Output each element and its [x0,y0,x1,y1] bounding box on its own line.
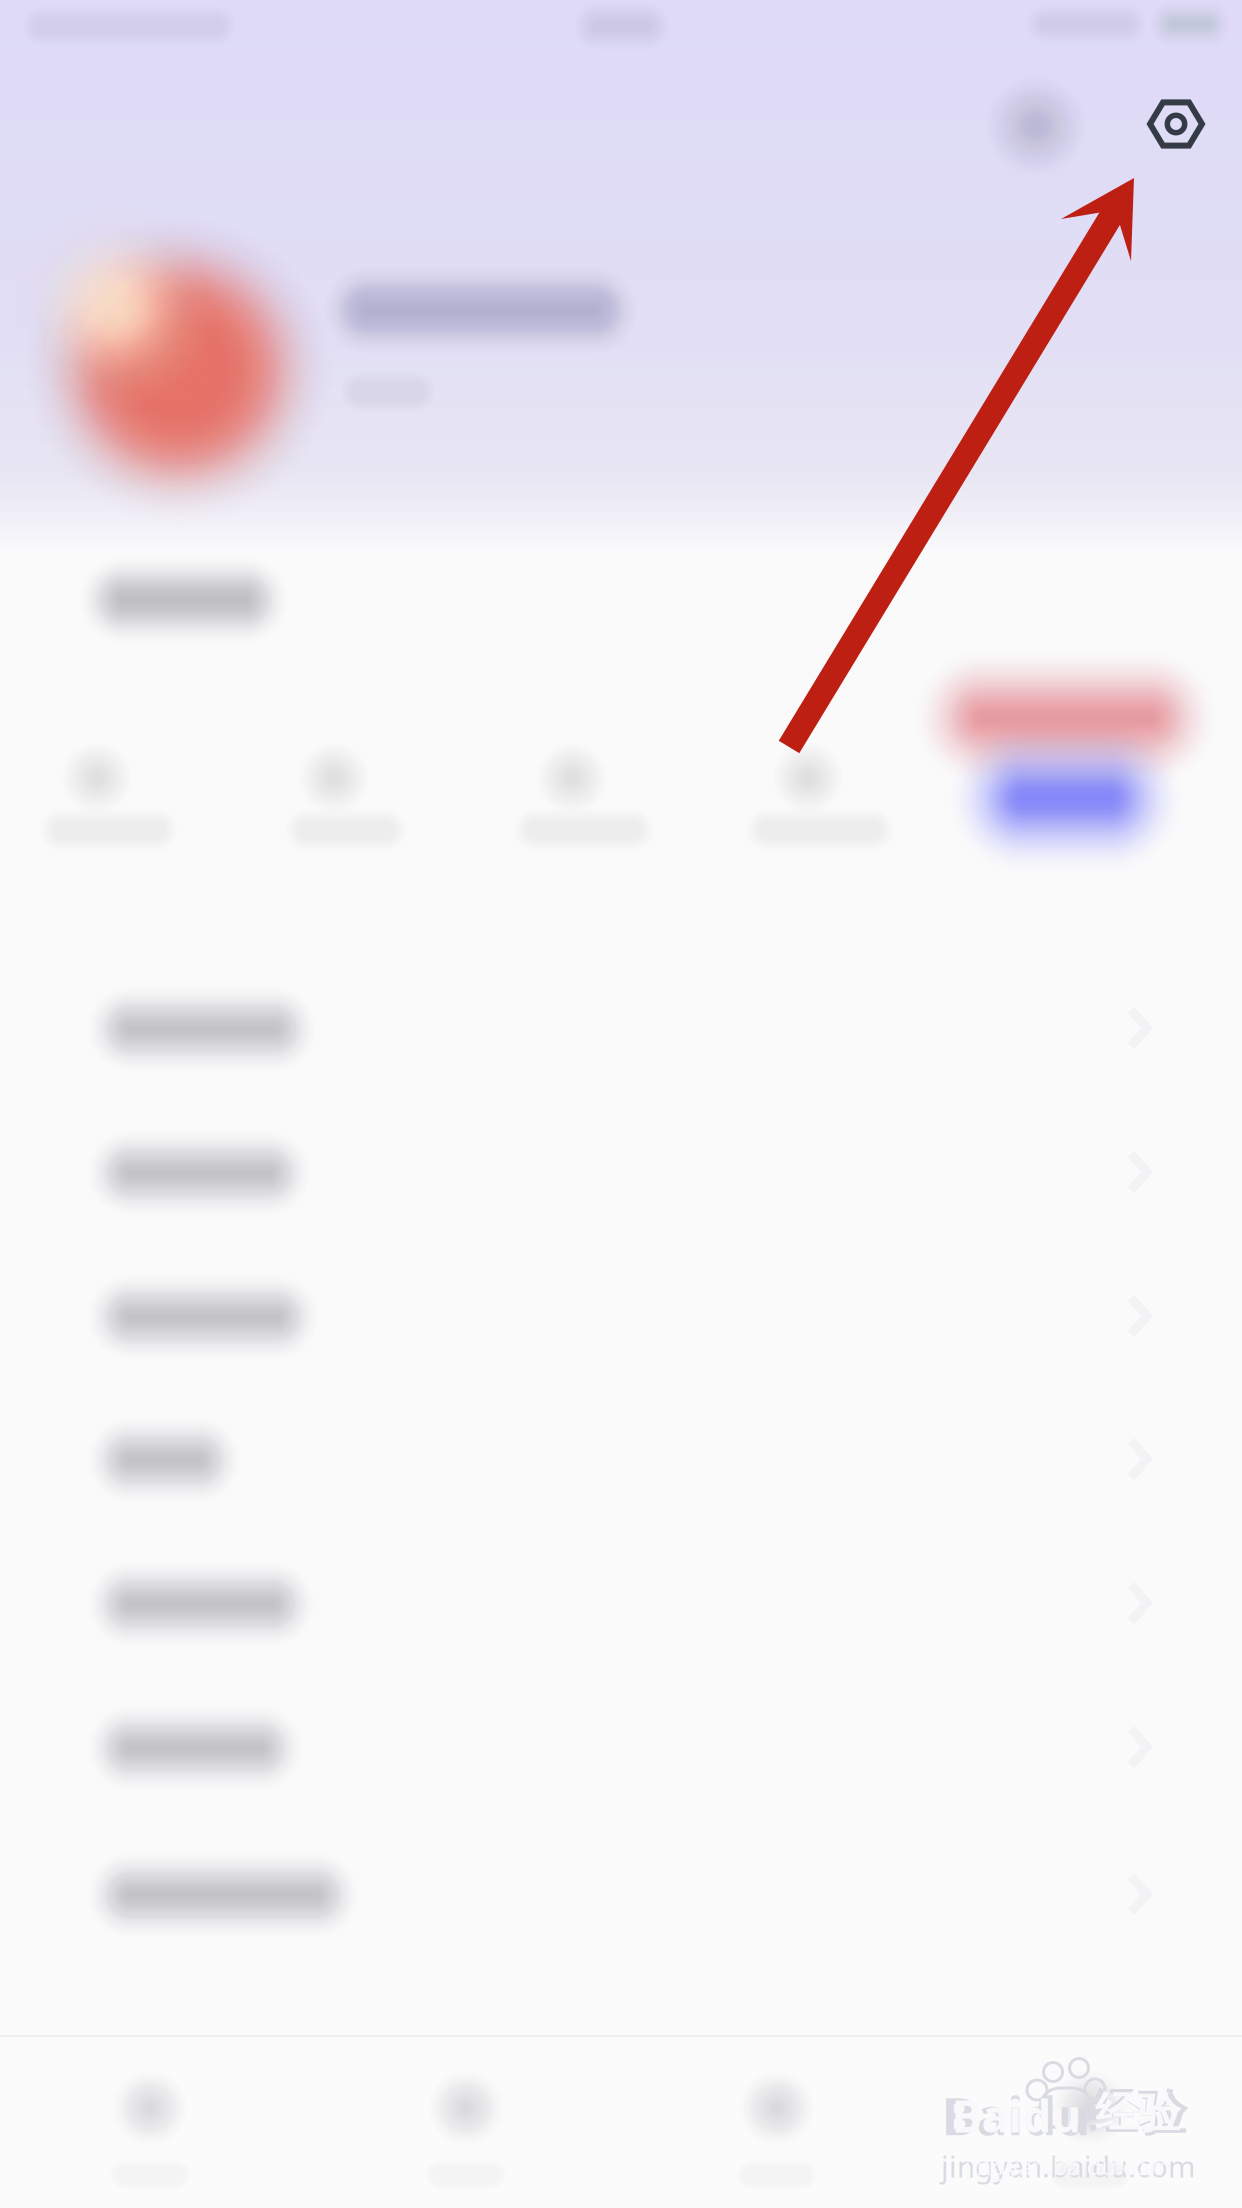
staticText: 经验 [1089,2083,1187,2143]
button[interactable]: Notifications [951,41,1121,211]
staticText: jingyan.baidu.com [941,2146,1195,2185]
button[interactable]: Shipped [442,675,702,925]
button[interactable]: Pending payment [0,675,227,925]
button[interactable]: Address book [0,957,1242,1101]
button[interactable]: My coupons [0,1245,1242,1389]
button[interactable]: Home [20,2036,280,2208]
staticText: 经验 [1095,2087,1181,2139]
button[interactable]: Me [960,2036,1220,2208]
staticText: jingyan.baidu.com [964,2150,1171,2182]
button[interactable]: Categories [336,2036,596,2208]
button[interactable]: Customer service [0,1532,1242,1676]
button[interactable]: Profile photo [0,144,397,584]
staticText: Baidu [941,2080,1090,2150]
button[interactable]: Favourites [0,1388,1242,1532]
button[interactable]: To ship [204,675,464,925]
button[interactable]: Cart [647,2036,907,2208]
button[interactable]: Payment methods [0,1101,1242,1245]
button[interactable]: Membership promotion [854,580,1242,950]
button[interactable]: Settings [1120,68,1232,180]
button[interactable]: Feedback [0,1676,1242,1820]
button[interactable]: Reviews [678,675,938,925]
button[interactable]: Terms and privacy [0,1823,1242,1967]
button[interactable]: Account name [266,236,696,466]
staticText: Baidu [951,2085,1080,2145]
